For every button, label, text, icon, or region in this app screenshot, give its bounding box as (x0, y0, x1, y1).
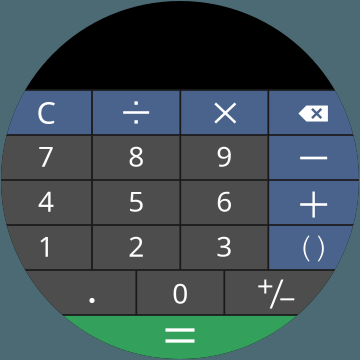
button[interactable]: Clear (0, 90, 92, 135)
button[interactable]: 6 (180, 180, 268, 225)
button[interactable]: 8 (92, 135, 180, 180)
button[interactable]: Multiply (180, 90, 268, 135)
button[interactable]: 9 (180, 135, 268, 180)
staticText: 5 (128, 182, 144, 220)
button[interactable]: Delete (268, 90, 360, 135)
staticText: 3 (216, 227, 232, 265)
button[interactable]: Plus (268, 180, 360, 225)
button[interactable]: 5 (92, 180, 180, 225)
staticText: 1 (38, 227, 54, 265)
staticText: 0 (172, 274, 188, 312)
button[interactable]: Plus minus (224, 270, 360, 315)
staticText: 2 (128, 227, 144, 265)
button[interactable]: 2 (92, 225, 180, 270)
staticText: 4 (38, 182, 54, 220)
button[interactable]: Equals (0, 315, 360, 360)
button[interactable]: Decimal point (0, 270, 136, 315)
button[interactable]: Zero (136, 270, 224, 315)
staticText: 9 (216, 137, 232, 175)
button[interactable]: 4 (0, 180, 92, 225)
staticText: C (36, 92, 55, 132)
button[interactable]: 1 (0, 225, 92, 270)
button[interactable]: Divide (92, 90, 180, 135)
button[interactable]: Minus (268, 135, 360, 180)
button[interactable]: 3 (180, 225, 268, 270)
button[interactable]: 7 (0, 135, 92, 180)
button[interactable]: Parentheses (268, 225, 360, 270)
staticText: 6 (216, 182, 232, 220)
staticText: 8 (128, 137, 144, 175)
staticText: 7 (38, 137, 54, 175)
